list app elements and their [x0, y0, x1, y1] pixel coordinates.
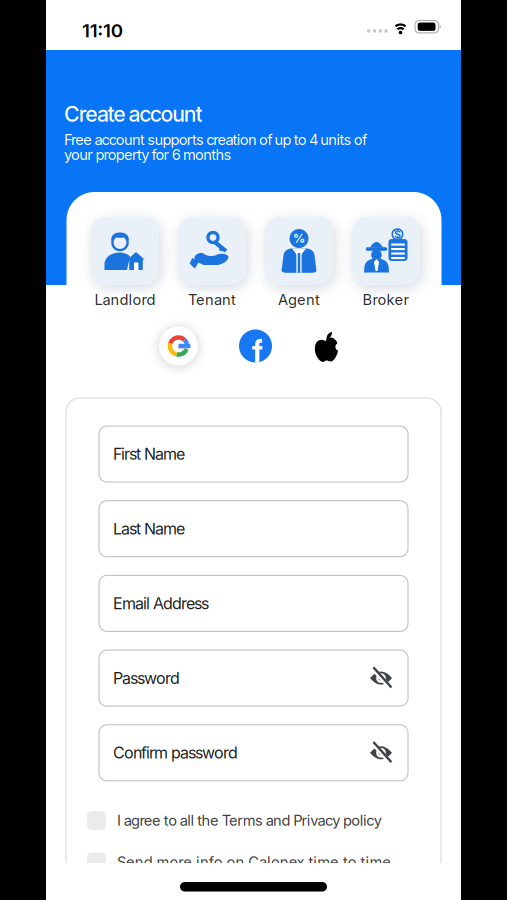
button[interactable]: Show password: [369, 742, 408, 764]
staticText: Free account supports creation of up to …: [64, 131, 367, 148]
button[interactable]: Send more info on Calonex time to time: [87, 852, 391, 871]
staticText: Confirm password: [113, 743, 238, 762]
staticText: Password: [113, 669, 180, 688]
staticText: 11:10: [82, 19, 123, 41]
button[interactable]: Landlord: [91, 217, 159, 308]
staticText: Last Name: [113, 519, 185, 538]
button[interactable]: %: [265, 217, 333, 308]
button[interactable]: I agree to all the Terms and Privacy pol…: [87, 811, 382, 830]
staticText: $: [394, 228, 401, 241]
staticText: First Name: [113, 445, 185, 463]
button[interactable]: Email Address: [99, 575, 408, 631]
button[interactable]: Sign up with Google: [159, 326, 198, 365]
button[interactable]: Password: [99, 650, 408, 706]
staticText: I agree to all the Terms and Privacy pol…: [117, 812, 382, 829]
staticText: %: [293, 231, 305, 246]
button[interactable]: Last Name: [99, 501, 408, 557]
button[interactable]: First Name: [99, 426, 408, 482]
staticText: Broker: [362, 291, 409, 308]
staticText: Agent: [278, 291, 320, 308]
staticText: Create account: [64, 101, 202, 127]
staticText: Landlord: [94, 291, 155, 308]
button[interactable]: Confirm password: [99, 725, 408, 781]
button[interactable]: $: [352, 217, 420, 308]
button[interactable]: Tenant: [178, 217, 246, 308]
button[interactable]: Sign up with Apple: [313, 329, 340, 362]
staticText: Tenant: [188, 291, 236, 308]
button[interactable]: Show password: [369, 667, 408, 689]
staticText: Send more info on Calonex time to time: [117, 853, 391, 871]
staticText: your property for 6 months: [64, 146, 231, 163]
staticText: Email Address: [113, 594, 209, 613]
button[interactable]: Sign up with Facebook: [239, 329, 272, 362]
